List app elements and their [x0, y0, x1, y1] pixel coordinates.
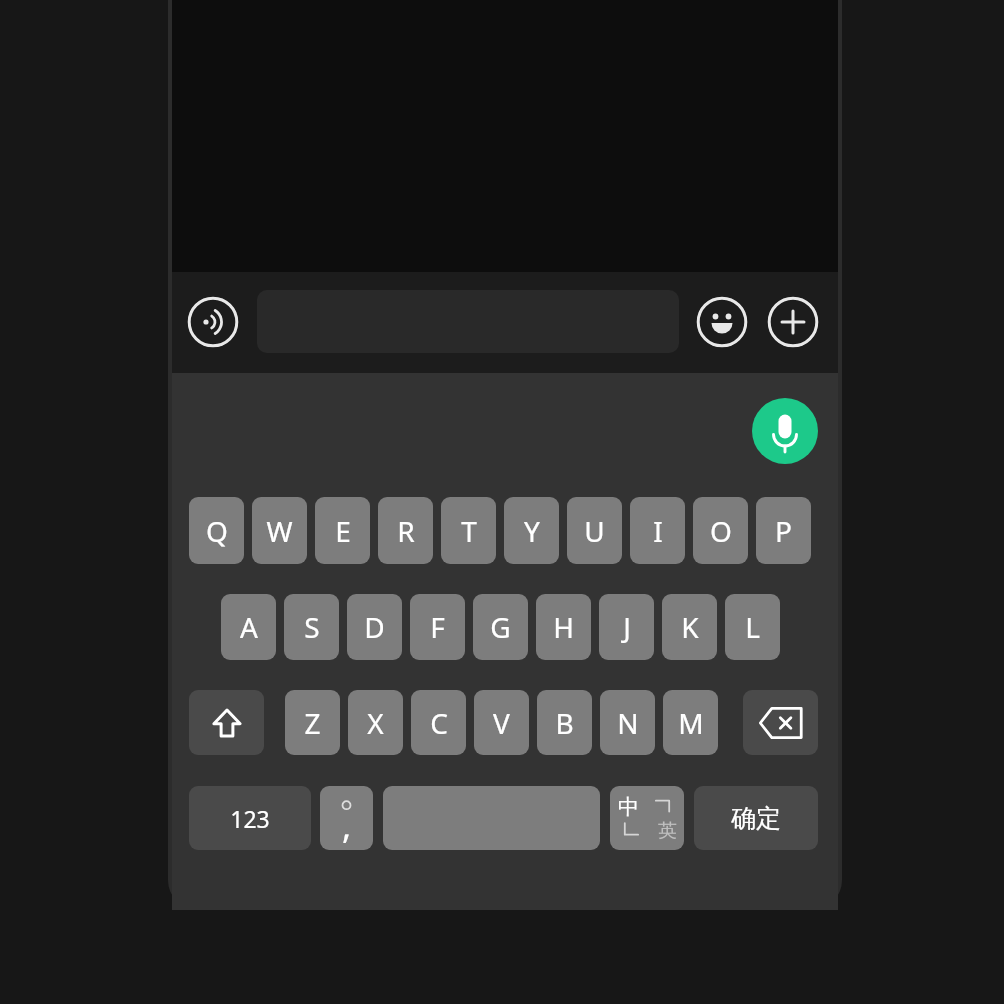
- staticText: ,: [342, 803, 352, 849]
- button[interactable]: 确定: [694, 786, 818, 850]
- staticText: U: [584, 512, 605, 550]
- button[interactable]: More options: [767, 296, 819, 348]
- button[interactable]: B: [537, 690, 592, 755]
- button[interactable]: Voice input: [187, 296, 239, 348]
- button[interactable]: K: [662, 594, 717, 660]
- staticText: X: [367, 704, 384, 742]
- staticText: L: [745, 608, 760, 646]
- button[interactable]: A: [221, 594, 276, 660]
- staticText: 英: [658, 819, 677, 843]
- staticText: 中: [618, 794, 639, 820]
- staticText: R: [397, 512, 415, 550]
- button[interactable]: Y: [504, 497, 559, 564]
- staticText: M: [678, 704, 704, 742]
- staticText: B: [555, 704, 574, 742]
- button[interactable]: Shift: [189, 690, 264, 755]
- button[interactable]: P: [756, 497, 811, 564]
- button[interactable]: 123: [189, 786, 311, 850]
- button[interactable]: U: [567, 497, 622, 564]
- staticText: W: [266, 512, 293, 550]
- button[interactable]: D: [347, 594, 402, 660]
- staticText: Q: [206, 512, 228, 550]
- staticText: H: [553, 608, 574, 646]
- staticText: S: [304, 608, 320, 646]
- button[interactable]: S: [284, 594, 339, 660]
- staticText: N: [617, 704, 639, 742]
- button[interactable]: L: [725, 594, 780, 660]
- staticText: 123: [230, 803, 270, 834]
- staticText: J: [623, 608, 631, 646]
- button[interactable]: Voice to text: [752, 398, 818, 464]
- button[interactable]: Emoji: [696, 296, 748, 348]
- staticText: Z: [304, 704, 321, 742]
- button[interactable]: O: [693, 497, 748, 564]
- staticText: E: [335, 512, 351, 550]
- staticText: G: [490, 608, 511, 646]
- button[interactable]: N: [600, 690, 655, 755]
- button[interactable]: M: [663, 690, 718, 755]
- button[interactable]: I: [630, 497, 685, 564]
- button[interactable]: Space: [383, 786, 600, 850]
- staticText: 确定: [731, 803, 781, 834]
- button[interactable]: X: [348, 690, 403, 755]
- staticText: D: [364, 608, 385, 646]
- staticText: K: [681, 608, 699, 646]
- button[interactable]: Backspace: [743, 690, 818, 755]
- staticText: V: [493, 704, 510, 742]
- staticText: T: [461, 512, 477, 550]
- button[interactable]: Q: [189, 497, 244, 564]
- staticText: C: [430, 704, 448, 742]
- button[interactable]: R: [378, 497, 433, 564]
- staticText: P: [775, 512, 792, 550]
- button[interactable]: J: [599, 594, 654, 660]
- button[interactable]: H: [536, 594, 591, 660]
- button[interactable]: Comma: [320, 786, 373, 850]
- button[interactable]: C: [411, 690, 466, 755]
- staticText: F: [430, 608, 445, 646]
- staticText: O: [710, 512, 732, 550]
- button[interactable]: F: [410, 594, 465, 660]
- button[interactable]: E: [315, 497, 370, 564]
- staticText: A: [240, 608, 258, 646]
- button[interactable]: Switch Chinese English input: [610, 786, 684, 850]
- button[interactable]: Z: [285, 690, 340, 755]
- button[interactable]: V: [474, 690, 529, 755]
- staticText: Y: [524, 512, 540, 550]
- staticText: I: [653, 512, 663, 550]
- button[interactable]: T: [441, 497, 496, 564]
- button[interactable]: G: [473, 594, 528, 660]
- button[interactable]: W: [252, 497, 307, 564]
